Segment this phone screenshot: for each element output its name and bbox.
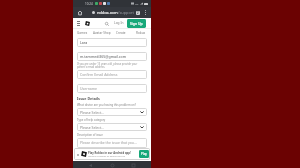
staticText: roblox.com (97, 10, 118, 15)
button[interactable]: Please Select... (77, 123, 147, 131)
staticText: Play (141, 152, 147, 156)
staticText: Avatar Shop (93, 31, 111, 35)
button[interactable]: Close (75, 152, 80, 157)
button[interactable]: Please describe the issue that you... (77, 138, 147, 148)
staticText: Sign Up (130, 21, 143, 26)
staticText: Please Select... (80, 110, 105, 115)
button[interactable]: Play (139, 150, 149, 158)
staticText: Millions of games by people like you (88, 155, 126, 158)
button[interactable]: Home (76, 9, 84, 17)
button[interactable]: Sign Up (127, 19, 146, 28)
button[interactable]: Search (103, 20, 110, 27)
staticText: 2 (137, 11, 139, 15)
button[interactable]: Create (111, 29, 131, 36)
button[interactable]: Confirm Email Address (77, 70, 147, 79)
staticText: 4G (135, 2, 139, 5)
staticText: Please Select... (80, 125, 105, 130)
staticText: /support (118, 10, 134, 15)
staticText: Username (80, 86, 98, 91)
staticText: What device are you having this problem … (77, 103, 136, 107)
button[interactable]: Menu (75, 20, 82, 27)
button[interactable]: Username (77, 84, 147, 93)
staticText: Log In (114, 21, 124, 25)
button[interactable]: Robux (131, 29, 151, 36)
staticText: Please describe the issue that you... (80, 140, 137, 145)
button[interactable]: Tabs (134, 9, 141, 16)
button[interactable]: m.tammedi365@gmail.com (77, 52, 147, 61)
button[interactable]: Lara (77, 38, 147, 47)
button[interactable]: Roblox home (84, 20, 91, 27)
button[interactable]: Please Select... (77, 108, 147, 116)
staticText: m.tammedi365@gmail.com (80, 54, 127, 59)
staticText: Games (77, 31, 88, 35)
staticText: 10:24 (85, 2, 93, 6)
staticText: Issue Details (77, 96, 100, 101)
button[interactable]: Log In (113, 19, 125, 27)
staticText: Description of issue (77, 133, 103, 137)
staticText: Robux (136, 31, 146, 35)
staticText: Lara (80, 40, 88, 45)
staticText: Create (116, 31, 126, 35)
button[interactable]: Games (73, 29, 92, 36)
button[interactable]: More options (142, 9, 149, 16)
button[interactable]: Back (87, 162, 94, 168)
staticText: If you are under 13 years old, please pr… (77, 62, 147, 68)
staticText: Type of help category (77, 118, 106, 122)
button[interactable]: Recents (130, 162, 137, 168)
staticText: Confirm Email Address (80, 72, 118, 77)
staticText: Play Roblox in our Android app! (88, 151, 131, 155)
button[interactable]: Home (109, 162, 116, 168)
button[interactable]: Avatar Shop (92, 29, 111, 36)
